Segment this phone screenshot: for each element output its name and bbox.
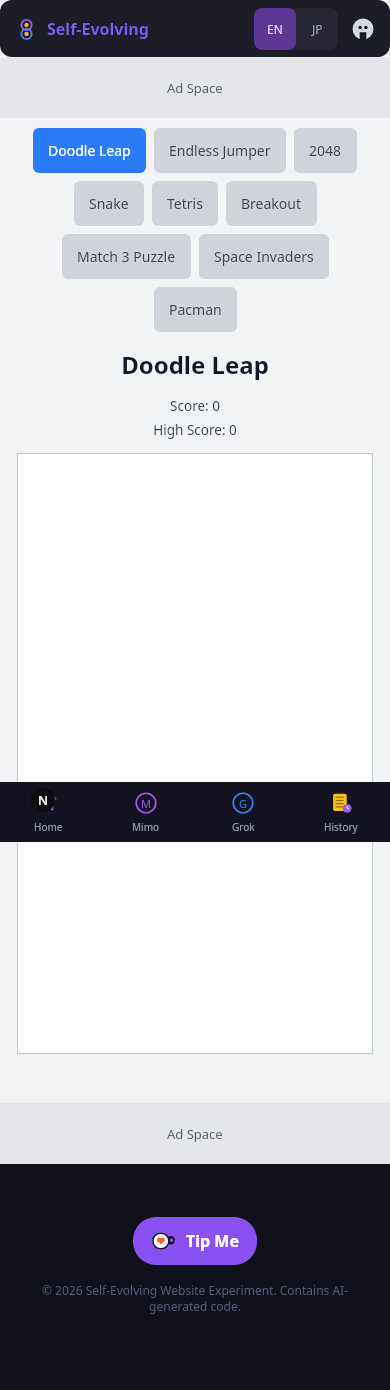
staticText: EN [267,21,283,37]
button[interactable]: Pacman [154,287,237,332]
button[interactable]: 2048 [294,128,357,173]
staticText: Doodle Leap [48,141,131,160]
button[interactable]: GitHub [350,16,376,42]
staticText: Ad Space [167,1125,223,1143]
button[interactable]: Snake [74,181,144,226]
staticText: N [38,791,49,809]
button[interactable]: Space Invaders [199,234,329,279]
button[interactable]: History [292,782,390,842]
button[interactable]: Tetris [152,181,218,226]
staticText: Space Invaders [214,247,314,266]
staticText: Mimo [132,820,160,834]
button[interactable]: Doodle Leap [33,128,146,173]
staticText: Snake [89,194,129,213]
staticText: 2048 [309,141,342,160]
staticText: Pacman [169,300,222,319]
staticText: G [239,796,248,811]
staticText: Breakout [241,194,302,213]
staticText: Endless Jumper [169,141,271,160]
button[interactable]: Self-Evolving [16,18,149,40]
staticText: Score: 0 [0,397,390,415]
staticText: Tip Me [186,1230,239,1252]
staticText: Home [34,820,63,834]
staticText: Self-Evolving [47,18,149,40]
button[interactable]: EN [254,8,296,50]
button[interactable]: Endless Jumper [154,128,286,173]
staticText: History [324,820,358,834]
staticText: Tetris [167,194,203,213]
staticText: Match 3 Puzzle [77,247,176,266]
staticText: JP [312,21,323,37]
button[interactable]: Match 3 Puzzle [62,234,191,279]
staticText: Doodle Leap [0,348,390,381]
staticText: M [141,796,151,811]
button[interactable]: Breakout [226,181,317,226]
button[interactable]: M [97,782,194,842]
button[interactable]: N [0,782,97,842]
button[interactable]: Tip Me [133,1217,257,1265]
staticText: © 2026 Self-Evolving Website Experiment.… [18,1282,372,1315]
staticText: Grok [232,820,255,834]
button[interactable]: JP [296,8,338,50]
staticText: Ad Space [167,79,223,97]
staticText: High Score: 0 [0,421,390,439]
button[interactable]: G [194,782,292,842]
